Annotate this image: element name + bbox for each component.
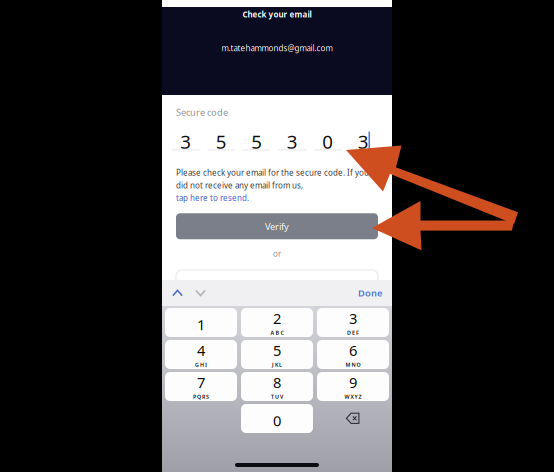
staticText: 6 [349,341,357,360]
button[interactable]: 8 [241,372,313,401]
staticText: 1 [197,315,205,334]
staticText: or [273,248,281,259]
button[interactable]: 0 [241,404,313,433]
button[interactable]: tap here to resend. [176,193,249,203]
button[interactable]: 3 [317,308,389,337]
button[interactable]: Delete [317,404,389,433]
staticText: G H I [195,361,207,368]
button[interactable]: Previous field [172,289,183,297]
staticText: W X Y Z [344,393,361,400]
staticText: Verify [265,220,289,232]
staticText: 2 [273,309,281,328]
staticText: 5 [216,129,227,154]
staticText: 3 [287,129,298,154]
button[interactable]: 4 [165,340,237,369]
button[interactable]: 5 [241,340,313,369]
staticText: Secure code [176,106,228,118]
staticText: 0 [322,129,333,154]
button[interactable]: 2 [241,308,313,337]
staticText: tap here to resend. [176,193,249,203]
staticText: 7 [197,373,205,392]
staticText: 5 [273,341,281,360]
staticText: 4 [197,341,205,360]
staticText: Check your email [242,9,311,20]
staticText: Please check your email for the secure c… [176,167,369,178]
staticText: J K L [272,361,282,368]
button[interactable]: Done [358,287,382,299]
button[interactable]: 6 [317,340,389,369]
button[interactable]: Next field [195,289,206,297]
staticText: 5 [251,129,262,154]
staticText: A B C [270,329,283,336]
staticText: Done [358,287,382,299]
button[interactable]: 9 [317,372,389,401]
button[interactable]: 7 [165,372,237,401]
staticText: M N O [345,361,360,368]
staticText: 9 [349,373,357,392]
staticText: P Q R S [193,393,209,400]
staticText: 3 [358,129,369,154]
staticText: 8 [273,373,281,392]
button[interactable]: 1 [165,308,237,337]
button[interactable]: Verify [176,213,378,239]
staticText: T U V [271,393,283,400]
staticText: 3 [180,129,191,154]
staticText: m.tatehammonds@gmail.com [221,43,332,53]
staticText: 0 [273,411,281,430]
staticText: D E F [347,329,359,336]
staticText: did not receive any email from us, [176,180,303,191]
staticText: 3 [349,309,357,328]
